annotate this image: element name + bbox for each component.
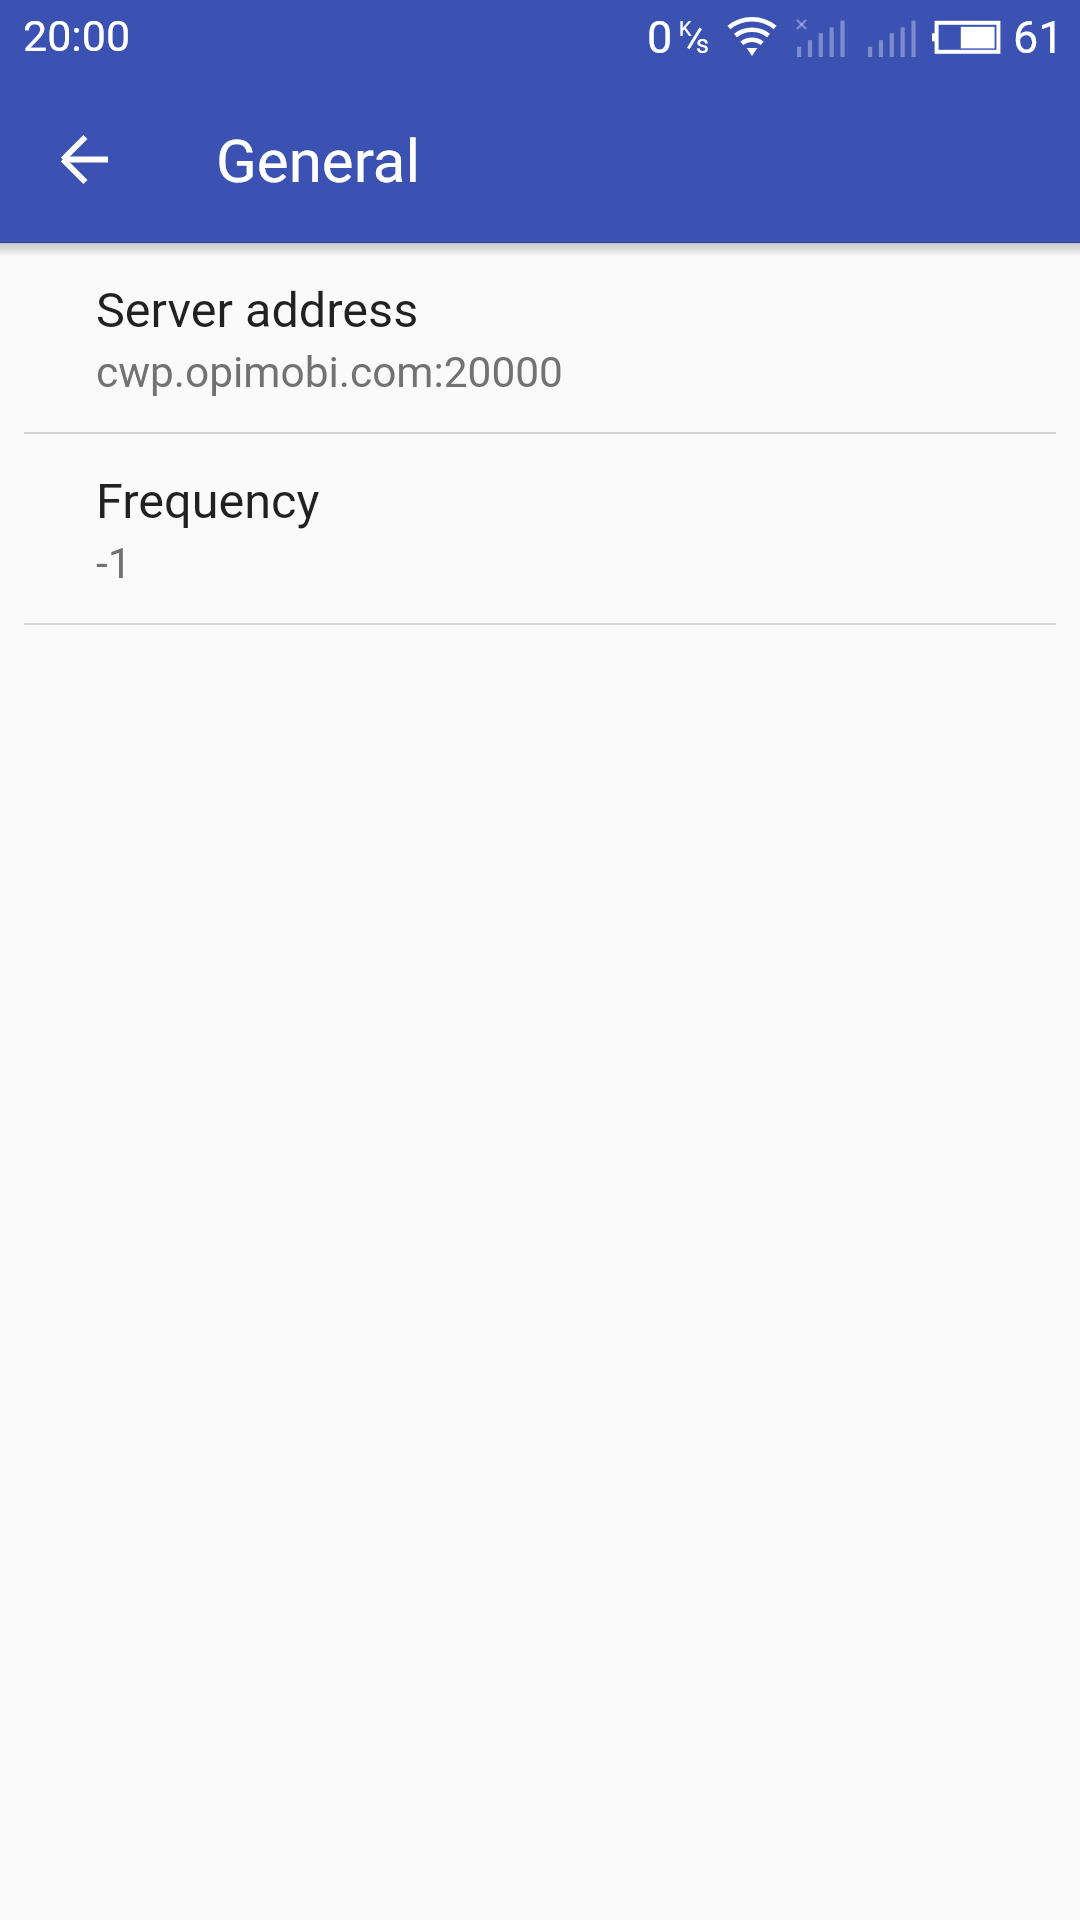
staticText: s [696, 30, 709, 59]
staticText: 0 [647, 11, 673, 64]
staticText: 61 [1013, 11, 1064, 64]
button[interactable]: Navigate up [24, 99, 144, 219]
staticText: cwp.opimobi.com:20000 [96, 348, 563, 398]
staticText: K [679, 17, 692, 40]
button[interactable]: Server address [0, 243, 1080, 432]
staticText: Frequency [96, 473, 320, 530]
staticText: Server address [96, 282, 419, 339]
staticText: 20:00 [23, 11, 131, 61]
button[interactable]: Frequency [0, 434, 1080, 623]
staticText: General [216, 126, 421, 196]
staticText: -1 [96, 539, 132, 589]
